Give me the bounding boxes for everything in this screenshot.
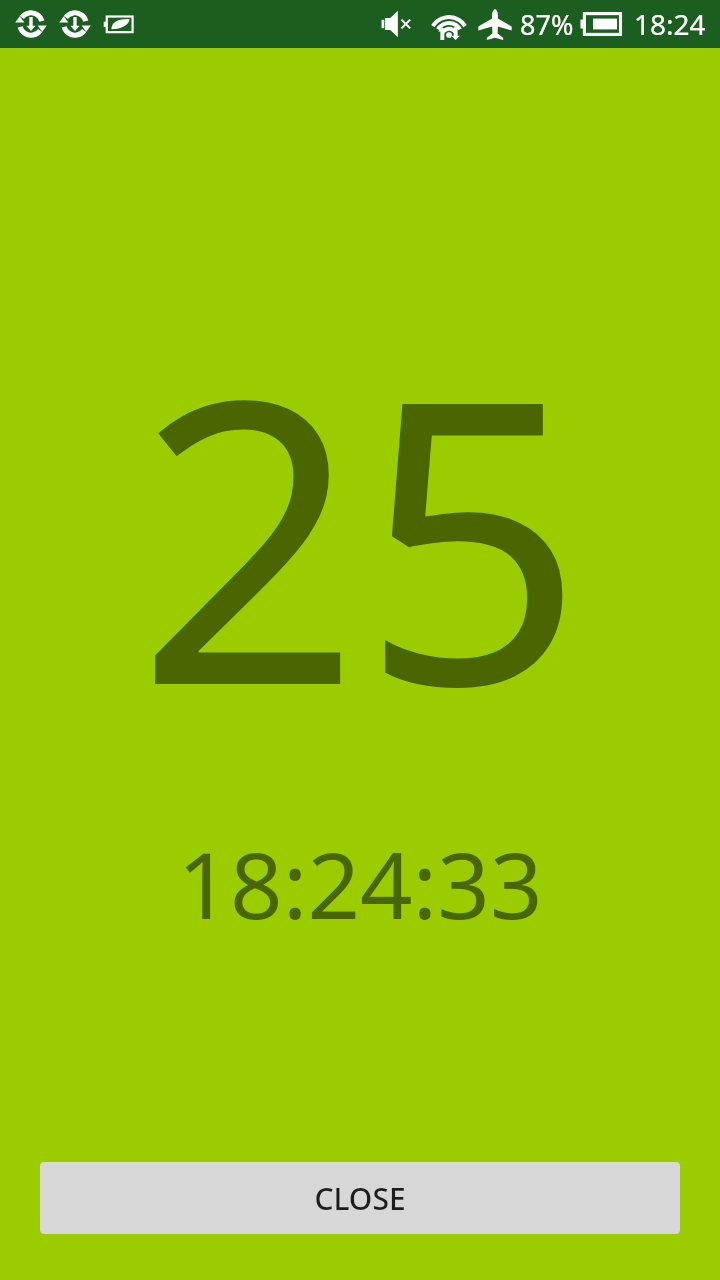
staticText: 87%	[520, 6, 574, 43]
button[interactable]: CLOSE	[40, 1162, 680, 1234]
staticText: 18:24	[634, 5, 706, 43]
staticText: 25	[136, 265, 585, 799]
staticText: 18:24:33	[177, 821, 543, 946]
staticText: CLOSE	[314, 1178, 406, 1219]
